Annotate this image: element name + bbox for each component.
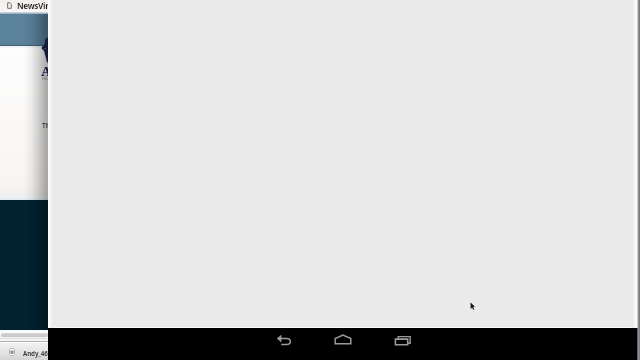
button[interactable]: Horizontal scroll bar	[1, 333, 48, 337]
staticText: YOUR	[42, 77, 48, 81]
button[interactable]: Recent apps	[380, 328, 424, 360]
button[interactable]: Home	[321, 328, 365, 360]
button[interactable]: Back	[262, 328, 306, 360]
staticText: Andy_46	[23, 349, 48, 357]
staticText: NewsVine	[17, 0, 48, 11]
staticText: Th	[42, 121, 48, 130]
button[interactable]: Downloaded file	[9, 348, 15, 356]
staticText: A	[41, 62, 48, 80]
